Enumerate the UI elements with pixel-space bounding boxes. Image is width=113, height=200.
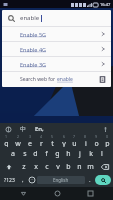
button[interactable]: 4 — [36, 134, 47, 147]
button[interactable]: d — [30, 147, 41, 160]
staticText: Enable 3G — [20, 61, 100, 68]
button[interactable]: Shift — [0, 160, 18, 173]
staticText: 5 — [51, 134, 54, 139]
button[interactable]: 1 — [0, 134, 12, 147]
staticText: g — [55, 149, 60, 159]
staticText: n — [77, 162, 82, 172]
staticText: x — [34, 162, 38, 172]
staticText: s — [23, 149, 27, 159]
button[interactable]: 6 — [58, 134, 69, 147]
button[interactable]: h — [63, 147, 74, 160]
staticText: y — [62, 139, 66, 147]
button[interactable]: x — [30, 160, 41, 173]
staticText: 6 — [63, 134, 66, 139]
button[interactable]: a — [7, 147, 19, 160]
button[interactable]: Input settings — [4, 125, 12, 133]
staticText: i — [85, 139, 87, 147]
staticText: t — [51, 139, 54, 147]
staticText: ?123 — [4, 177, 15, 184]
staticText: 0 — [106, 134, 109, 139]
button[interactable]: English — [37, 176, 85, 184]
staticText: Search web for — [20, 76, 57, 83]
staticText: d — [33, 149, 38, 159]
button[interactable]: Home — [47, 187, 67, 200]
staticText: 16:47 — [100, 2, 111, 7]
staticText: En, — [35, 125, 44, 133]
button[interactable]: c — [41, 160, 52, 173]
button[interactable]: Search — [95, 175, 111, 185]
staticText: q — [4, 139, 9, 147]
button[interactable]: b — [63, 160, 74, 173]
staticText: j — [79, 149, 81, 159]
button[interactable]: Recent apps — [80, 187, 100, 200]
button[interactable]: . — [85, 173, 94, 187]
staticText: enable — [20, 14, 40, 22]
staticText: 4 — [40, 134, 43, 139]
staticText: English — [53, 177, 69, 183]
button[interactable]: Back — [13, 187, 33, 200]
staticText: 1 — [5, 134, 8, 139]
staticText: 7 — [73, 134, 76, 139]
staticText: r — [40, 139, 43, 147]
button[interactable]: Enable 3G — [2, 57, 111, 71]
button[interactable]: , — [18, 173, 27, 187]
button[interactable]: 5 — [47, 134, 58, 147]
button[interactable]: k — [85, 147, 96, 160]
staticText: h — [66, 149, 71, 159]
staticText: a — [11, 149, 15, 159]
button[interactable]: ?123 — [1, 173, 18, 187]
button[interactable]: Backspace — [96, 160, 113, 173]
staticText: z — [22, 162, 26, 172]
button[interactable]: g — [52, 147, 63, 160]
button[interactable]: n — [74, 160, 85, 173]
button[interactable]: En, — [33, 125, 46, 133]
staticText: k — [89, 149, 93, 159]
button[interactable]: 8 — [80, 134, 91, 147]
staticText: e — [28, 139, 32, 147]
button[interactable]: 0 — [102, 134, 113, 147]
staticText: 中 — [20, 125, 26, 133]
button[interactable]: 9 — [91, 134, 102, 147]
button[interactable]: enable — [2, 10, 111, 26]
staticText: u — [72, 139, 77, 147]
button[interactable]: z — [18, 160, 30, 173]
button[interactable]: Enable 5G — [2, 27, 111, 41]
button[interactable]: Emoji — [27, 173, 37, 187]
staticText: p — [105, 139, 110, 147]
button[interactable]: f — [41, 147, 52, 160]
staticText: c — [45, 162, 49, 172]
button[interactable]: l — [96, 147, 107, 160]
staticText: o — [94, 139, 99, 147]
button[interactable]: j — [74, 147, 85, 160]
button[interactable]: Enable 4G — [2, 42, 111, 56]
button[interactable]: 2 — [12, 134, 24, 147]
staticText: enable — [57, 76, 73, 83]
staticText: Enable 5G — [20, 31, 100, 38]
staticText: l — [101, 149, 103, 159]
button[interactable]: Search web for — [2, 72, 111, 87]
staticText: . — [89, 176, 91, 184]
staticText: 8 — [84, 134, 87, 139]
button[interactable]: 3 — [24, 134, 36, 147]
staticText: , — [22, 176, 24, 184]
staticText: v — [56, 162, 60, 172]
button[interactable]: 中 — [18, 125, 28, 133]
button[interactable]: v — [52, 160, 63, 173]
staticText: 9 — [95, 134, 98, 139]
button[interactable]: s — [19, 147, 30, 160]
button[interactable]: m — [85, 160, 96, 173]
staticText: 3 — [29, 134, 32, 139]
staticText: 2 — [17, 134, 20, 139]
staticText: w — [15, 139, 21, 147]
staticText: b — [66, 162, 71, 172]
staticText: m — [87, 162, 94, 172]
button[interactable]: Voice input — [101, 125, 109, 133]
staticText: Enable 4G — [20, 46, 100, 53]
button[interactable]: 7 — [69, 134, 80, 147]
staticText: f — [45, 149, 48, 159]
